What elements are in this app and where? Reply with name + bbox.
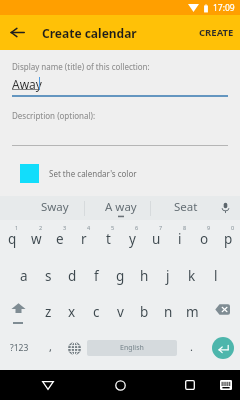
button[interactable]: 7 xyxy=(144,220,168,255)
staticText: Description (optional): xyxy=(12,110,96,121)
staticText: Seat xyxy=(174,199,198,215)
staticText: l xyxy=(214,267,218,285)
button[interactable]: n xyxy=(156,291,180,327)
staticText: n xyxy=(164,303,173,321)
staticText: c xyxy=(93,303,100,321)
button[interactable]: Recents xyxy=(179,370,201,400)
button[interactable]: ?123 xyxy=(0,327,38,369)
button[interactable]: 2 xyxy=(24,220,48,255)
button[interactable]: English xyxy=(87,340,177,356)
button[interactable]: Back xyxy=(36,370,60,400)
staticText: Away xyxy=(12,76,42,92)
button[interactable]: v xyxy=(108,291,132,327)
staticText: i xyxy=(178,230,182,248)
button[interactable]: z xyxy=(36,291,60,327)
button[interactable]: 9 xyxy=(192,220,216,255)
staticText: 8 xyxy=(183,224,187,231)
staticText: k xyxy=(188,267,196,285)
staticText: Create calendar xyxy=(42,25,137,41)
button[interactable]: Home xyxy=(108,370,132,400)
button[interactable]: 6 xyxy=(120,220,144,255)
staticText: 6 xyxy=(135,224,139,231)
staticText: 5 xyxy=(111,224,115,231)
staticText: x xyxy=(68,303,76,321)
button[interactable]: Change language xyxy=(62,327,87,369)
staticText: 0 xyxy=(231,224,235,231)
staticText: 4 xyxy=(87,224,91,231)
staticText: v xyxy=(117,303,124,321)
staticText: Display name (title) of this collection: xyxy=(12,61,150,72)
button[interactable]: s xyxy=(36,255,60,291)
staticText: f xyxy=(94,267,99,285)
button[interactable]: . xyxy=(177,327,206,369)
other: Keyboard shown xyxy=(214,370,238,400)
button[interactable]: 5 xyxy=(96,220,120,255)
staticText: ?123 xyxy=(10,342,29,354)
staticText: t xyxy=(106,230,111,248)
staticText: 7 xyxy=(159,224,163,231)
staticText: b xyxy=(140,303,149,321)
button[interactable]: Shift xyxy=(0,291,36,327)
staticText: 1 xyxy=(15,224,19,231)
button[interactable]: Set the calendar's color xyxy=(0,161,240,185)
staticText: 17:09 xyxy=(213,2,235,14)
button[interactable]: l xyxy=(204,255,228,291)
staticText: Sway xyxy=(41,199,69,215)
staticText: English xyxy=(120,343,144,353)
staticText: Set the calendar's color xyxy=(49,168,137,179)
button[interactable]: g xyxy=(108,255,132,291)
staticText: q xyxy=(8,230,17,248)
staticText: . xyxy=(190,339,193,354)
button[interactable]: k xyxy=(180,255,204,291)
staticText: h xyxy=(140,267,149,285)
staticText: a xyxy=(20,267,28,285)
button[interactable]: d xyxy=(60,255,84,291)
staticText: w xyxy=(31,230,42,248)
staticText: 2 xyxy=(39,224,43,231)
staticText: 9 xyxy=(207,224,211,231)
button[interactable]: j xyxy=(156,255,180,291)
button[interactable]: 8 xyxy=(168,220,192,255)
button[interactable]: Enter xyxy=(206,327,240,369)
button[interactable]: h xyxy=(132,255,156,291)
button[interactable]: 1 xyxy=(0,220,24,255)
button[interactable]: CREATE xyxy=(189,15,240,50)
button[interactable]: x xyxy=(60,291,84,327)
staticText: o xyxy=(200,230,209,248)
staticText: CREATE xyxy=(199,26,234,39)
button[interactable]: Backspace xyxy=(204,291,240,327)
staticText: 3 xyxy=(63,224,67,231)
button[interactable]: 3 xyxy=(48,220,72,255)
staticText: d xyxy=(68,267,77,285)
staticText: m xyxy=(186,303,199,321)
button[interactable]: A way xyxy=(84,196,150,220)
staticText: , xyxy=(49,339,52,354)
button[interactable]: Sway xyxy=(0,196,84,220)
staticText: r xyxy=(81,230,87,248)
staticText: j xyxy=(166,267,170,285)
button[interactable]: , xyxy=(38,327,62,369)
staticText: s xyxy=(45,267,52,285)
button[interactable]: c xyxy=(84,291,108,327)
staticText: g xyxy=(116,267,125,285)
staticText: p xyxy=(224,230,233,248)
button[interactable]: Back xyxy=(0,15,34,50)
button[interactable]: 0 xyxy=(216,220,240,255)
button[interactable]: m xyxy=(180,291,204,327)
button[interactable]: a xyxy=(12,255,36,291)
button[interactable]: 4 xyxy=(72,220,96,255)
staticText: u xyxy=(152,230,161,248)
staticText: z xyxy=(45,303,52,321)
button[interactable]: Voice input xyxy=(210,196,240,220)
staticText: y xyxy=(129,230,136,248)
button[interactable]: b xyxy=(132,291,156,327)
button[interactable]: Seat xyxy=(150,196,210,220)
staticText: A way xyxy=(105,199,137,215)
staticText: e xyxy=(56,230,64,248)
button[interactable]: f xyxy=(84,255,108,291)
